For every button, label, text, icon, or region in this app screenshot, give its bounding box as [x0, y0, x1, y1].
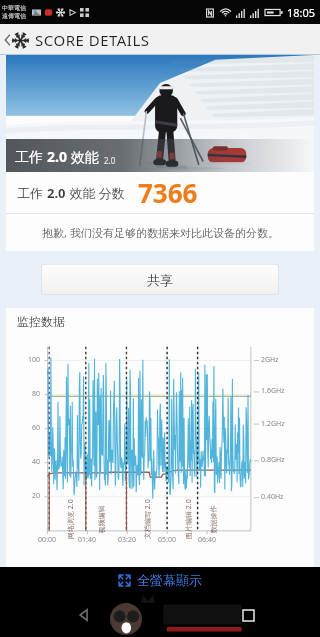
staticText: 00:00 — [38, 535, 56, 545]
staticText: 60 — [32, 423, 41, 433]
staticText: 20 — [32, 491, 41, 501]
staticText: 共享 — [147, 272, 173, 288]
other: Back — [4, 33, 11, 47]
staticText: 网络浏览 2.0 — [66, 499, 76, 539]
button[interactable]: Back — [0, 27, 158, 53]
staticText: 100 — [28, 355, 41, 365]
staticText: 2.0 — [47, 147, 67, 166]
staticText: 0.8GHz — [261, 455, 285, 465]
button[interactable]: 共享 — [41, 264, 279, 295]
staticText: 1.6GHz — [261, 386, 285, 396]
staticText: 18:05 — [287, 5, 316, 20]
staticText: 0.40Hz — [261, 492, 284, 502]
staticText: 图片编辑 2.0 — [184, 499, 194, 539]
staticText: 06:40 — [198, 535, 216, 545]
button[interactable]: Back — [70, 601, 98, 629]
staticText: 工作 — [17, 184, 47, 202]
staticText: 抱歉, 我们没有足够的数据来对比此设备的分数。 — [42, 225, 279, 240]
staticText: 中華電信 — [2, 4, 26, 12]
staticText: 2.0 — [47, 184, 66, 202]
staticText: 03:20 — [118, 535, 136, 545]
staticText: 文档编写 2.0 — [143, 499, 153, 539]
staticText: 40 — [32, 457, 41, 467]
staticText: 2GHz — [261, 355, 279, 365]
staticText: 01:40 — [78, 535, 96, 545]
staticText: 1.2GHz — [261, 419, 285, 429]
staticText: 数据操作 — [208, 505, 217, 533]
staticText: 05:00 — [158, 535, 176, 545]
button[interactable]: Recent apps — [236, 603, 260, 627]
staticText: 视频编辑 — [96, 505, 105, 533]
staticText: 效能 — [67, 147, 99, 166]
staticText: SCORE DETAILS — [35, 30, 150, 50]
staticText: 工作 — [15, 147, 47, 166]
staticText: 7366 — [138, 175, 198, 210]
staticText: 效能 分数 — [66, 184, 125, 202]
staticText: 监控数据 — [17, 314, 65, 329]
staticText: 80 — [32, 389, 41, 399]
staticText: 全螢幕顯示 — [137, 572, 202, 588]
button[interactable]: 全螢幕顯示 — [0, 567, 320, 593]
staticText: 遠傳電信 — [2, 12, 26, 20]
staticText: 2.0 — [104, 155, 116, 166]
